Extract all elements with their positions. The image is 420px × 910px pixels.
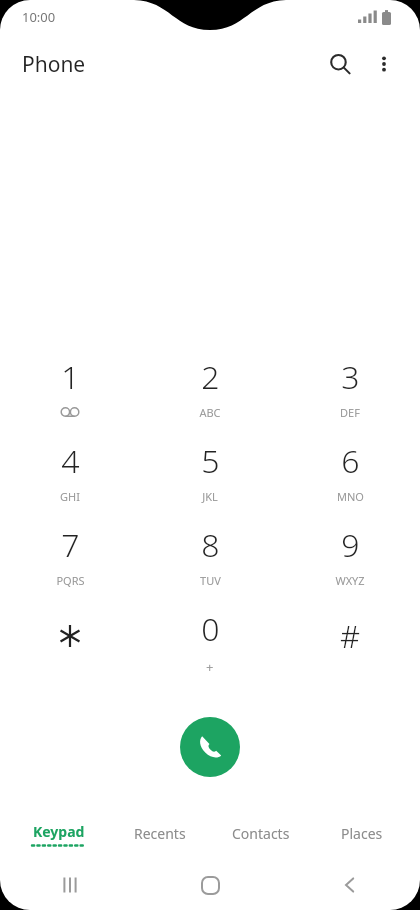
staticText: #: [340, 615, 361, 657]
staticText: 10:00: [22, 8, 56, 26]
button[interactable]: 2: [140, 357, 280, 441]
staticText: 6: [341, 439, 360, 483]
button[interactable]: Recents: [109, 812, 210, 854]
staticText: Places: [341, 824, 383, 843]
staticText: MNO: [337, 489, 364, 504]
button[interactable]: 1: [0, 357, 140, 441]
staticText: Keypad: [33, 822, 85, 841]
staticText: 1: [61, 355, 80, 399]
button[interactable]: 4: [0, 441, 140, 525]
staticText: 0: [201, 607, 220, 651]
staticText: 4: [61, 439, 80, 483]
staticText: 2: [201, 355, 220, 399]
button[interactable]: 5: [140, 441, 280, 525]
button[interactable]: Back: [280, 860, 420, 910]
button[interactable]: More options: [362, 42, 406, 86]
button[interactable]: 7: [0, 525, 140, 609]
button[interactable]: 6: [280, 441, 420, 525]
button[interactable]: 8: [140, 525, 280, 609]
button[interactable]: Recent apps: [0, 860, 140, 910]
staticText: DEF: [340, 405, 360, 420]
button[interactable]: 3: [280, 357, 420, 441]
staticText: TUV: [200, 573, 221, 588]
staticText: 5: [201, 439, 220, 483]
button[interactable]: Contacts: [210, 812, 311, 854]
staticText: GHI: [60, 489, 80, 504]
staticText: 8: [201, 523, 220, 567]
staticText: Recents: [134, 824, 186, 843]
staticText: 7: [61, 523, 80, 567]
staticText: Contacts: [232, 824, 290, 843]
button[interactable]: [0, 609, 140, 693]
button[interactable]: Call: [180, 717, 240, 777]
button[interactable]: 0: [140, 609, 280, 693]
staticText: 3: [341, 355, 360, 399]
staticText: 9: [341, 523, 360, 567]
staticText: JKL: [202, 489, 218, 504]
staticText: WXYZ: [335, 573, 365, 588]
staticText: +: [206, 658, 214, 676]
button[interactable]: Keypad: [8, 812, 109, 854]
button[interactable]: Home: [140, 860, 280, 910]
staticText: ABC: [199, 405, 221, 420]
button[interactable]: Search: [318, 42, 362, 86]
button[interactable]: Places: [311, 812, 412, 854]
button[interactable]: 9: [280, 525, 420, 609]
staticText: Phone: [22, 50, 86, 79]
button[interactable]: #: [280, 609, 420, 693]
staticText: PQRS: [56, 573, 85, 588]
